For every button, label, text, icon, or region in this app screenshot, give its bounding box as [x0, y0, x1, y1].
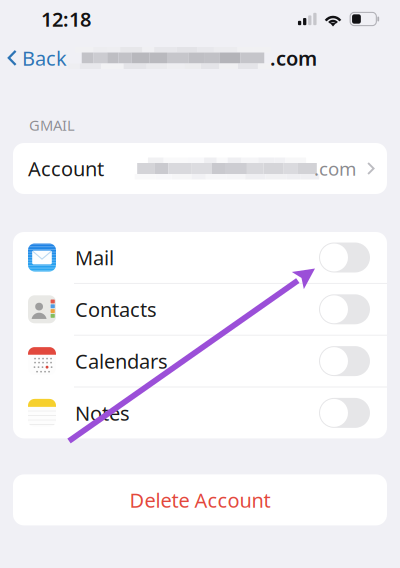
- staticText: Account: [28, 155, 104, 182]
- button[interactable]: Account: [13, 143, 387, 194]
- button[interactable]: Notes: [13, 387, 387, 438]
- button[interactable]: Delete Account: [13, 474, 387, 525]
- staticText: Notes: [75, 400, 130, 426]
- button[interactable]: Calendars: [13, 336, 387, 387]
- staticText: Mail: [75, 244, 114, 271]
- staticText: Delete Account: [129, 487, 270, 513]
- staticText: .com: [270, 45, 317, 71]
- staticText: 12:18: [41, 6, 91, 32]
- staticText: Contacts: [75, 296, 157, 323]
- button[interactable]: Mail: [13, 232, 387, 283]
- staticText: Back: [22, 45, 67, 71]
- staticText: Calendars: [75, 348, 168, 374]
- staticText: GMAIL: [29, 115, 75, 135]
- button[interactable]: Contacts: [13, 284, 387, 335]
- staticText: .com: [314, 156, 356, 181]
- button[interactable]: Back: [0, 40, 75, 76]
